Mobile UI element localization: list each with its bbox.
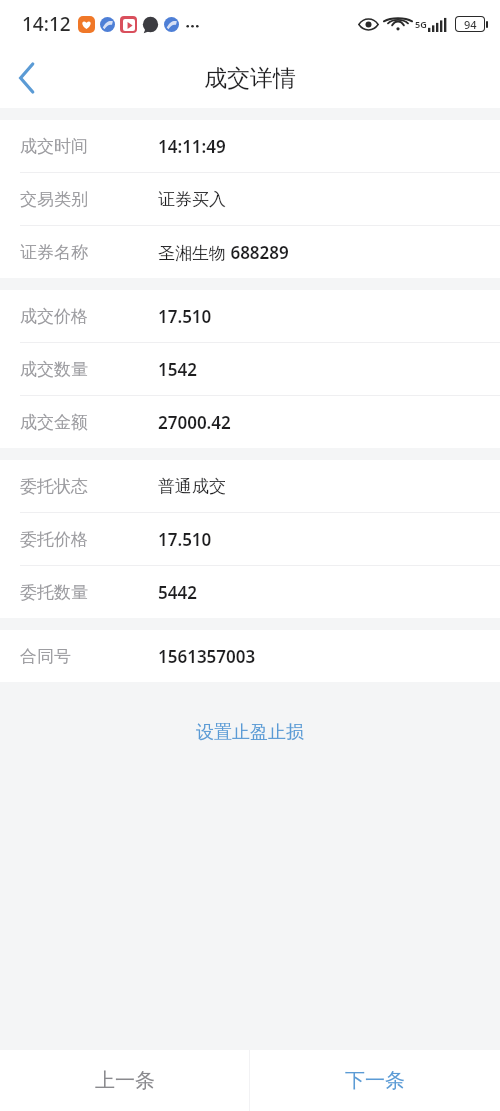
button[interactable]: 证券名称 xyxy=(0,226,500,278)
staticText: 94 xyxy=(464,17,477,31)
staticText: 1542 xyxy=(158,358,197,381)
staticText: 27000.42 xyxy=(158,411,231,434)
staticText: 成交数量 xyxy=(20,359,88,380)
staticText: 委托状态 xyxy=(20,476,88,497)
staticText: 普通成交 xyxy=(158,476,226,497)
button[interactable]: Back xyxy=(0,51,54,105)
staticText: 成交价格 xyxy=(20,306,88,327)
button[interactable]: 设置止盈止损 xyxy=(196,721,304,744)
staticText: 圣湘生物 688289 xyxy=(158,241,289,264)
staticText: 合同号 xyxy=(20,646,71,667)
staticText: 5G xyxy=(415,18,427,30)
button[interactable]: 交易类别 xyxy=(0,173,500,226)
button[interactable]: 成交金额 xyxy=(0,396,500,448)
staticText: 证券名称 xyxy=(20,242,88,263)
staticText: 成交详情 xyxy=(204,64,296,93)
button[interactable]: 委托价格 xyxy=(0,513,500,566)
staticText: 委托价格 xyxy=(20,529,88,550)
staticText: 14:12 xyxy=(22,11,71,37)
staticText: 委托数量 xyxy=(20,582,88,603)
staticText: 下一条 xyxy=(345,1068,405,1093)
staticText: 上一条 xyxy=(95,1068,155,1093)
button[interactable]: 下一条 xyxy=(250,1050,500,1111)
staticText: 设置止盈止损 xyxy=(196,721,304,744)
staticText: 5442 xyxy=(158,581,197,604)
staticText: 交易类别 xyxy=(20,189,88,210)
button[interactable]: 成交时间 xyxy=(0,120,500,173)
staticText: 17.510 xyxy=(158,528,212,551)
button[interactable]: 合同号 xyxy=(0,630,500,682)
staticText: 17.510 xyxy=(158,305,212,328)
button[interactable]: 上一条 xyxy=(0,1050,249,1111)
button[interactable]: 委托数量 xyxy=(0,566,500,618)
staticText: 14:11:49 xyxy=(158,135,226,158)
button[interactable]: 成交数量 xyxy=(0,343,500,396)
staticText: 成交金额 xyxy=(20,412,88,433)
button[interactable]: 委托状态 xyxy=(0,460,500,513)
button[interactable]: 成交价格 xyxy=(0,290,500,343)
staticText: 1561357003 xyxy=(158,645,256,668)
staticText: 成交时间 xyxy=(20,136,88,157)
staticText: 证券买入 xyxy=(158,189,226,210)
